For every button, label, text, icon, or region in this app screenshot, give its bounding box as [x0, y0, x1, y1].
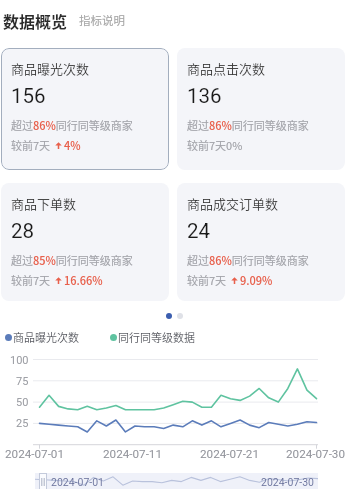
staticText: 2024-07-21	[200, 447, 260, 461]
button[interactable]: Range start handle	[35, 473, 318, 489]
button[interactable]: 商品点击次数	[177, 48, 345, 170]
staticText: 数据概览	[3, 9, 68, 32]
staticText: 较前7天	[11, 272, 51, 288]
staticText: 超过86%同行同等级商家	[187, 252, 309, 268]
staticText: 2024-07-01	[51, 476, 105, 488]
staticText: 较前7天0%	[187, 137, 243, 153]
staticText: 商品曝光次数	[13, 329, 79, 345]
staticText: 较前7天	[187, 272, 227, 288]
staticText: 4%	[64, 137, 81, 153]
button[interactable]: 商品成交订单数	[177, 183, 345, 301]
staticText: 136	[187, 84, 222, 108]
staticText: 2024-07-30	[286, 447, 346, 461]
staticText: 商品成交订单数	[187, 194, 279, 213]
staticText: 超过85%同行同等级商家	[11, 252, 133, 268]
button[interactable]: 商品曝光次数	[1, 48, 169, 170]
staticText: 100	[10, 354, 29, 367]
staticText: 商品曝光次数	[11, 59, 90, 78]
staticText: 商品下单数	[11, 194, 77, 213]
staticText: 超过86%同行同等级商家	[187, 117, 309, 133]
staticText: 50	[16, 396, 29, 409]
button[interactable]	[166, 313, 172, 319]
staticText: 超过86%同行同等级商家	[11, 117, 133, 133]
staticText: 商品点击次数	[187, 59, 266, 78]
staticText: 25	[16, 417, 29, 430]
other: Range start handle	[39, 473, 47, 489]
staticText: 75	[16, 375, 29, 388]
staticText: 同行同等级数据	[118, 329, 195, 345]
button[interactable]	[177, 313, 183, 319]
staticText: 2024-07-11	[103, 447, 163, 461]
staticText: 指标说明	[79, 12, 125, 29]
staticText: 28	[11, 219, 35, 243]
staticText: 16.66%	[64, 272, 103, 288]
staticText: 2024-07-01	[5, 447, 65, 461]
staticText: 156	[11, 84, 46, 108]
button[interactable]: 指标说明	[79, 12, 125, 29]
button[interactable]: 商品下单数	[1, 183, 169, 301]
staticText: 2024-07-30	[261, 476, 315, 488]
staticText: 24	[187, 219, 211, 243]
staticText: 较前7天	[11, 137, 51, 153]
staticText: 9.09%	[240, 272, 273, 288]
